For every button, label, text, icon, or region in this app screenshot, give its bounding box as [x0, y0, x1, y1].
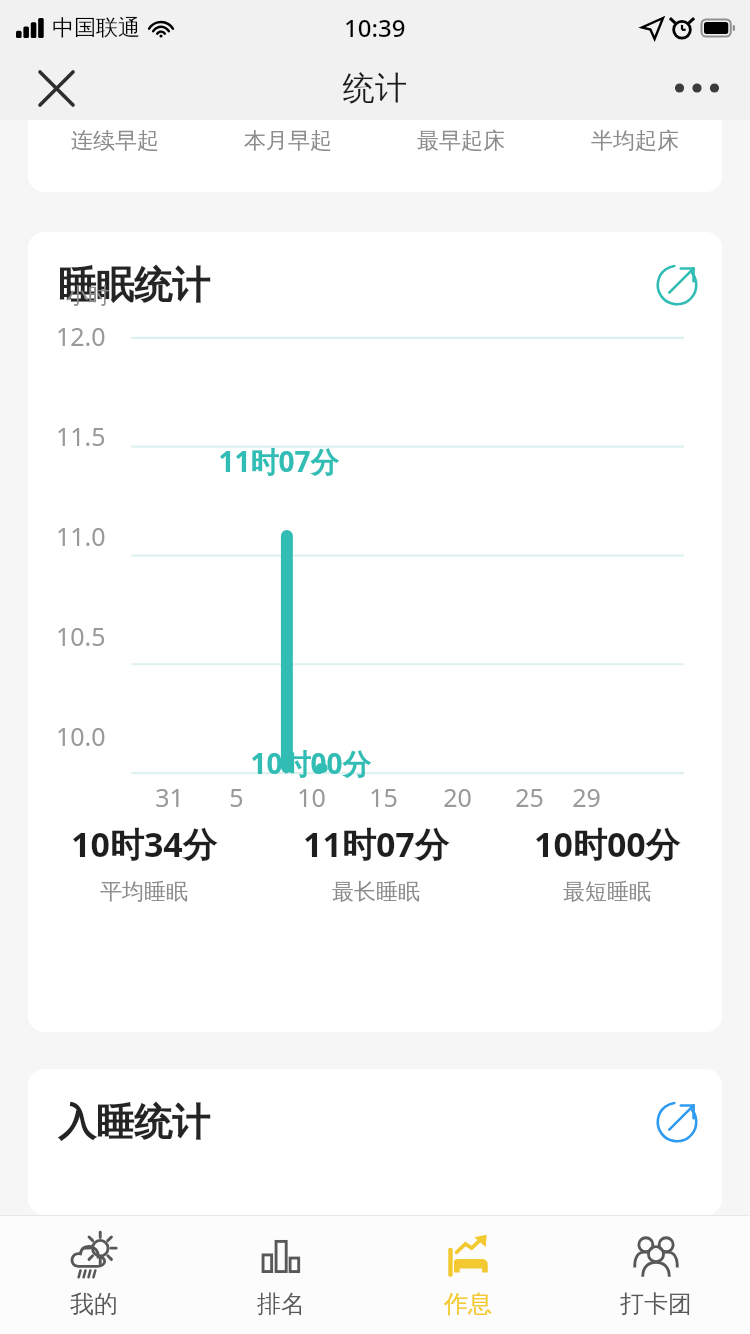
staticText: 作息	[444, 1289, 492, 1319]
button[interactable]: Close	[26, 58, 86, 118]
staticText: 10:39	[344, 11, 406, 44]
button[interactable]: 我的	[0, 1216, 187, 1334]
button[interactable]: 连续早起	[28, 120, 722, 192]
button[interactable]: Share 睡眠统计	[648, 256, 706, 314]
staticText: 平均睡眠	[100, 878, 188, 906]
staticText: 10.5	[56, 619, 106, 653]
staticText: 25	[515, 780, 544, 814]
staticText: 小时	[66, 282, 110, 310]
staticText: 11时07分	[218, 442, 339, 480]
staticText: 打卡团	[620, 1289, 692, 1319]
staticText: 10	[297, 780, 326, 814]
staticText: 11.5	[56, 419, 106, 453]
staticText: 我的	[70, 1289, 118, 1319]
staticText: 12.0	[56, 319, 106, 353]
staticText: 10.0	[56, 719, 106, 753]
staticText: 11时07分	[303, 821, 449, 867]
button[interactable]: 睡眠统计	[28, 232, 722, 1032]
button[interactable]: 入睡统计	[28, 1069, 722, 1215]
staticText: 半均起床	[591, 127, 679, 155]
staticText: 统计	[343, 68, 407, 108]
staticText: 排名	[257, 1289, 305, 1319]
staticText: 最早起床	[417, 127, 505, 155]
staticText: 11.0	[56, 519, 106, 553]
button[interactable]: 排名	[187, 1216, 374, 1334]
staticText: 10时00分	[250, 744, 371, 782]
staticText: 中国联通	[52, 14, 140, 42]
staticText: 入睡统计	[58, 1098, 210, 1146]
staticText: 20	[443, 780, 472, 814]
button[interactable]: 10时34分	[28, 821, 260, 906]
staticText: 本月早起	[244, 127, 332, 155]
staticText: 最短睡眠	[563, 878, 651, 906]
button[interactable]: 11时07分	[260, 821, 491, 906]
staticText: 10时00分	[534, 821, 680, 867]
button[interactable]: 打卡团	[562, 1216, 750, 1334]
button[interactable]: Share 入睡统计	[648, 1093, 706, 1151]
button[interactable]: 作息	[374, 1216, 562, 1334]
staticText: 5	[229, 780, 244, 814]
button[interactable]: 10时00分	[491, 821, 722, 906]
staticText: 29	[572, 780, 601, 814]
staticText: 睡眠统计	[58, 261, 210, 309]
staticText: 15	[369, 780, 398, 814]
staticText: 连续早起	[71, 127, 159, 155]
staticText: 10时34分	[71, 821, 217, 867]
button[interactable]: More options	[666, 57, 728, 119]
staticText: 31	[155, 780, 184, 814]
staticText: 最长睡眠	[332, 878, 420, 906]
